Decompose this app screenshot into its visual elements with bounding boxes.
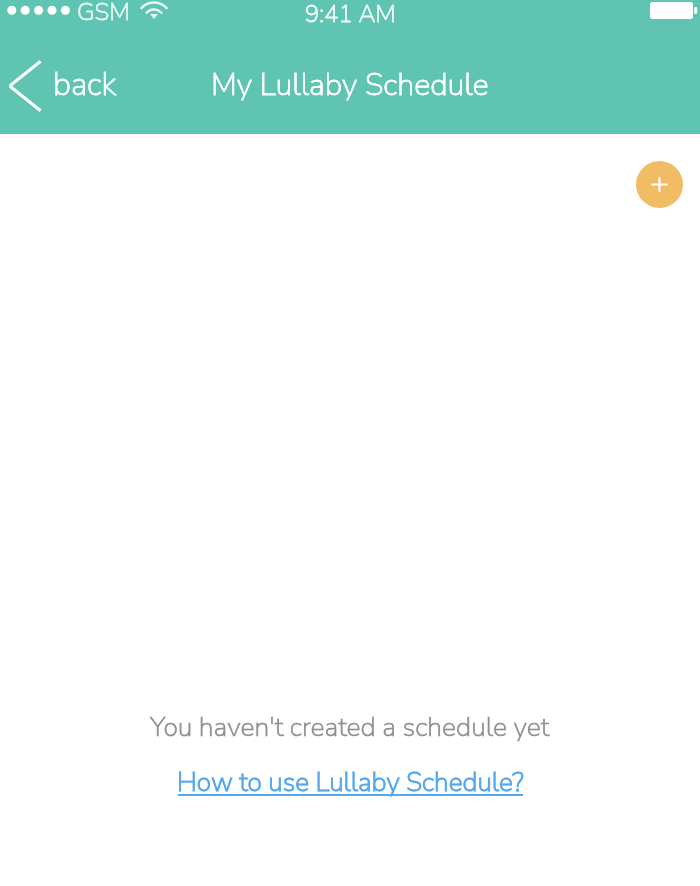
staticText: back — [53, 63, 117, 106]
staticText: My Lullaby Schedule — [211, 64, 489, 106]
button[interactable]: Add schedule — [636, 161, 683, 208]
staticText: GSM — [77, 0, 130, 28]
button[interactable]: back — [4, 52, 128, 118]
staticText: 9:41 AM — [305, 0, 396, 30]
staticText: back — [53, 63, 117, 106]
staticText: 9:41 AM — [305, 0, 396, 30]
staticText: You haven't created a schedule yet — [150, 709, 550, 745]
staticText: You haven't created a schedule yet — [150, 709, 550, 745]
staticText: GSM — [77, 0, 130, 28]
staticText: My Lullaby Schedule — [211, 64, 489, 106]
button[interactable]: How to use Lullaby Schedule? — [174, 755, 527, 805]
staticText: How to use Lullaby Schedule? — [177, 764, 524, 800]
staticText: How to use Lullaby Schedule? — [177, 764, 524, 800]
